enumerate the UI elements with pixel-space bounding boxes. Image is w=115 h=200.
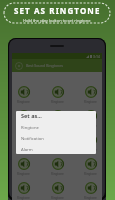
button[interactable]: Notification bbox=[21, 136, 96, 147]
staticText: Ringtone bbox=[17, 172, 30, 176]
button[interactable]: App icon bbox=[15, 62, 23, 70]
staticText: Ringtone bbox=[17, 148, 30, 152]
staticText: Ringtone bbox=[51, 100, 64, 104]
staticText: Ringtone bbox=[17, 196, 30, 200]
button[interactable]: Play ringtone bbox=[51, 158, 64, 176]
staticText: Ringtone bbox=[17, 124, 30, 128]
staticText: Best Sound Ringtones bbox=[26, 63, 64, 68]
button[interactable]: Play ringtone bbox=[51, 110, 64, 128]
button[interactable]: Play ringtone bbox=[84, 110, 97, 128]
button[interactable]: Play ringtone bbox=[17, 110, 30, 128]
button[interactable]: Play ringtone bbox=[17, 134, 30, 152]
button[interactable]: Ringtone bbox=[21, 125, 96, 136]
button[interactable]: Play ringtone bbox=[51, 86, 64, 104]
staticText: Ringtone bbox=[84, 124, 97, 128]
staticText: Ringtone bbox=[21, 125, 39, 131]
button[interactable]: Play ringtone bbox=[51, 182, 64, 200]
button[interactable]: Play ringtone bbox=[84, 86, 97, 104]
button[interactable]: Alarm bbox=[21, 147, 96, 154]
staticText: 3:14 bbox=[93, 54, 100, 59]
staticText: Ringtone bbox=[84, 172, 97, 176]
staticText: Ringtone bbox=[51, 196, 64, 200]
staticText: Ringtone bbox=[17, 100, 30, 104]
staticText: Ringtone bbox=[84, 196, 97, 200]
staticText: Alarm bbox=[21, 147, 33, 153]
button[interactable]: Play ringtone bbox=[84, 158, 97, 176]
staticText: SET AS RINGTONE bbox=[14, 5, 101, 16]
staticText: Ringtone bbox=[84, 100, 97, 104]
button[interactable]: Play ringtone bbox=[17, 158, 30, 176]
staticText: Ringtone bbox=[84, 148, 97, 152]
staticText: Hold the play button to set ringtone bbox=[23, 18, 91, 23]
staticText: Ringtone bbox=[51, 172, 64, 176]
button[interactable]: Play ringtone bbox=[17, 182, 30, 200]
button[interactable]: Play ringtone bbox=[84, 182, 97, 200]
button[interactable]: Play ringtone bbox=[17, 86, 30, 104]
button[interactable]: Play ringtone bbox=[84, 134, 97, 152]
staticText: Set as... bbox=[21, 112, 42, 119]
staticText: Notification bbox=[21, 136, 44, 142]
